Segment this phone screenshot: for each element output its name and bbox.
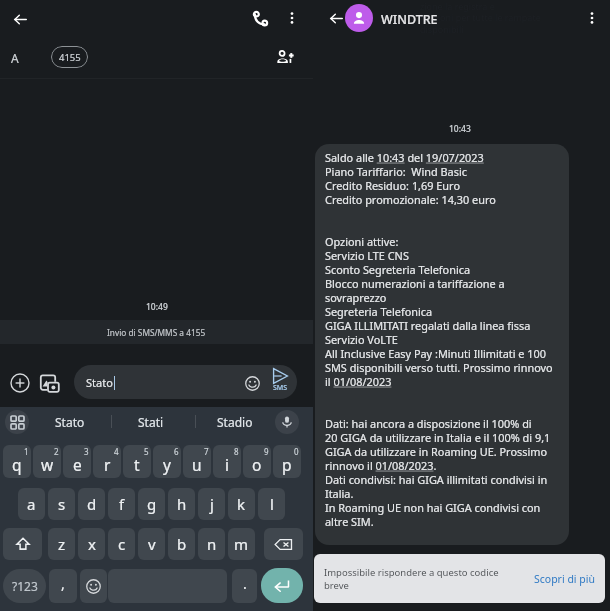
staticText: ?123 — [12, 578, 38, 594]
button[interactable]: Scopri di più — [530, 566, 599, 592]
button[interactable]: Send SMS — [266, 367, 294, 397]
staticText: 0 — [294, 446, 299, 457]
button[interactable]: o — [243, 445, 271, 478]
button[interactable]: Stato — [74, 365, 297, 399]
staticText: Invio di SMS/MMS a 4155 — [107, 327, 206, 338]
staticText: 9 — [264, 446, 269, 457]
button[interactable]: Shift — [3, 528, 42, 560]
button[interactable]: t — [123, 445, 151, 478]
staticText: A — [11, 50, 19, 66]
button[interactable]: Open gallery — [38, 371, 62, 395]
button[interactable]: Back — [3, 2, 37, 36]
staticText: i — [225, 454, 229, 475]
button[interactable]: Emoji — [80, 569, 107, 603]
staticText: m — [234, 534, 249, 554]
staticText: 5 — [144, 446, 149, 457]
staticText: e — [73, 454, 82, 475]
staticText: . — [243, 574, 247, 593]
staticText: 10:43 — [449, 123, 471, 135]
button[interactable]: Backspace — [264, 528, 303, 560]
staticText: a — [27, 494, 36, 514]
button[interactable]: m — [228, 528, 255, 560]
staticText: w — [41, 454, 54, 475]
staticText: u — [192, 454, 202, 475]
button[interactable]: q — [3, 445, 31, 478]
button[interactable]: f — [108, 488, 135, 520]
button[interactable]: a — [18, 488, 45, 520]
button[interactable]: k — [228, 488, 255, 520]
staticText: t — [134, 454, 140, 475]
staticText: 1 — [24, 446, 29, 457]
button[interactable]: u — [183, 445, 211, 478]
button[interactable]: , — [49, 569, 77, 603]
staticText: 7 — [204, 446, 209, 457]
button[interactable]: z — [48, 528, 75, 560]
staticText: Stati — [138, 414, 164, 430]
staticText: 4 — [114, 446, 119, 457]
button[interactable]: Impossibile rispondere a questo codice b… — [314, 554, 605, 603]
staticText: Stadio — [217, 414, 253, 430]
button[interactable]: . — [232, 569, 257, 603]
button[interactable]: Back — [319, 1, 353, 35]
button[interactable]: y — [153, 445, 181, 478]
button[interactable]: Keyboard toolbar — [5, 410, 29, 434]
button[interactable]: Add attachment — [8, 371, 32, 395]
staticText: p — [282, 454, 292, 475]
staticText: SMS — [273, 383, 288, 393]
staticText: h — [177, 494, 187, 514]
button[interactable]: e — [63, 445, 91, 478]
button[interactable]: j — [198, 488, 225, 520]
button[interactable]: ?123 — [3, 569, 46, 603]
staticText: 6 — [174, 446, 179, 457]
staticText: b — [177, 534, 187, 554]
button[interactable]: l — [258, 488, 285, 520]
button[interactable]: Stato — [30, 408, 110, 436]
staticText: 2 — [54, 446, 59, 457]
button[interactable]: s — [48, 488, 75, 520]
button[interactable]: Enter — [261, 568, 303, 603]
staticText: k — [237, 494, 246, 514]
button[interactable]: h — [168, 488, 195, 520]
staticText: 8 — [234, 446, 239, 457]
button[interactable]: More options — [275, 1, 309, 35]
button[interactable]: v — [138, 528, 165, 560]
button[interactable]: Call — [243, 1, 277, 35]
button[interactable]: i — [213, 445, 241, 478]
staticText: zione la registra e mazioni per tutte le… — [420, 0, 541, 36]
staticText: z — [58, 534, 66, 554]
staticText: l — [270, 494, 274, 514]
staticText: j — [210, 494, 214, 514]
button[interactable]: Insert emoji — [241, 372, 264, 395]
staticText: 3 — [84, 446, 89, 457]
button[interactable]: d — [78, 488, 105, 520]
button[interactable]: c — [108, 528, 135, 560]
button[interactable]: n — [198, 528, 225, 560]
button[interactable]: Saldo alle 10:43 del 19/07/2023 Piano Ta… — [315, 144, 569, 545]
button[interactable]: Stati — [111, 408, 191, 436]
staticText: y — [163, 454, 171, 475]
button[interactable]: Add people — [268, 40, 302, 74]
button[interactable]: x — [78, 528, 105, 560]
staticText: o — [252, 454, 262, 475]
staticText: d — [87, 494, 97, 514]
button[interactable]: Stadio — [195, 408, 275, 436]
staticText: s — [58, 494, 66, 514]
staticText: n — [207, 534, 217, 554]
button[interactable]: r — [93, 445, 121, 478]
staticText: WINDTRE — [381, 11, 438, 28]
staticText: r — [104, 454, 111, 475]
staticText: Impossibile rispondere a questo codice b… — [324, 566, 499, 592]
button[interactable]: g — [138, 488, 165, 520]
button[interactable]: b — [168, 528, 195, 560]
staticText: Scopri di più — [534, 572, 595, 586]
staticText: , — [61, 574, 65, 593]
button[interactable]: p — [273, 445, 301, 478]
button[interactable]: Voice input — [275, 410, 299, 434]
staticText: 10:49 — [146, 301, 168, 313]
staticText: x — [88, 534, 96, 554]
button[interactable]: w — [33, 445, 61, 478]
staticText: g — [147, 494, 157, 514]
button[interactable]: More options — [575, 1, 609, 35]
button[interactable]: 4155 — [51, 46, 88, 68]
